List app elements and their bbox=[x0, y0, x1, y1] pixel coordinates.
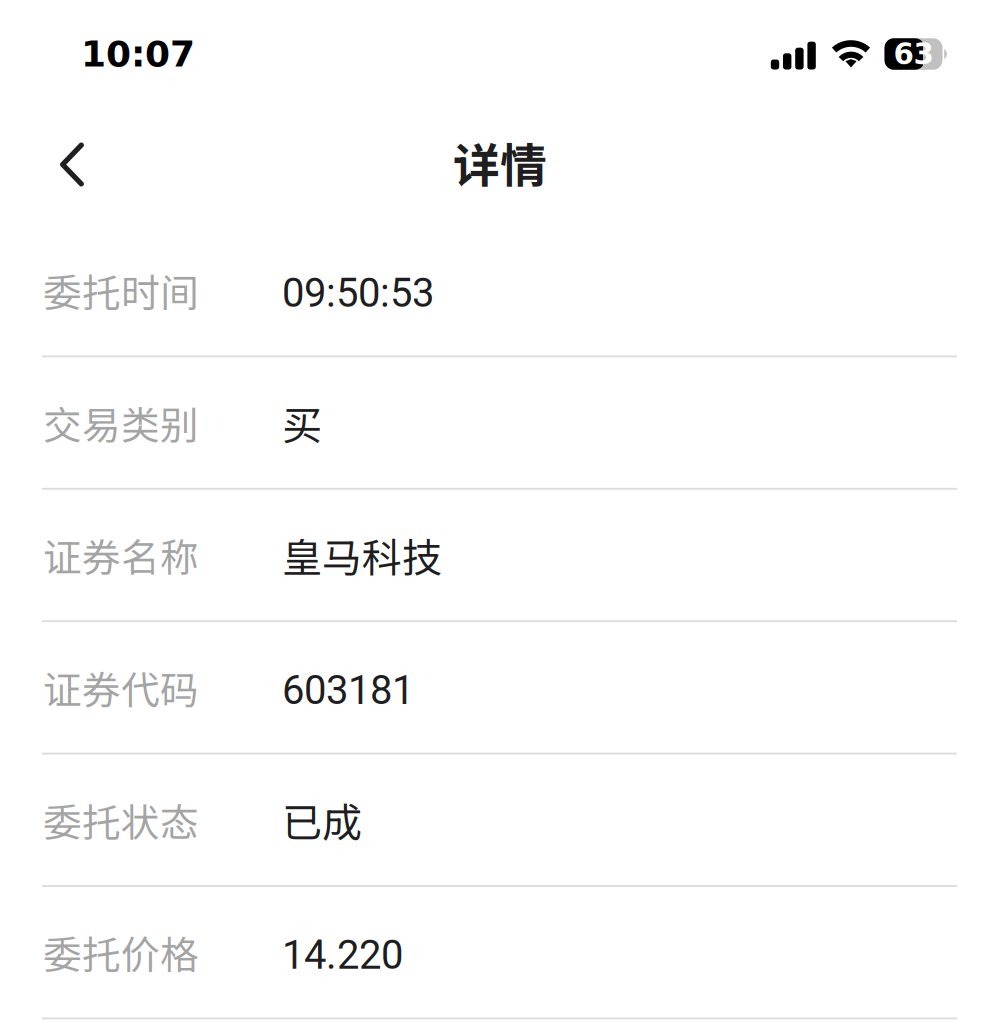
staticText: 14.220 bbox=[282, 932, 403, 979]
staticText: 09:50:53 bbox=[282, 270, 434, 317]
staticText: 证券代码 bbox=[43, 659, 199, 715]
staticText: 已成 bbox=[282, 791, 362, 849]
staticText: 详情 bbox=[453, 129, 547, 196]
staticText: 交易类别 bbox=[43, 395, 199, 451]
staticText: 10:07 bbox=[81, 33, 195, 75]
staticText: 委托价格 bbox=[43, 924, 199, 980]
staticText: 委托时间 bbox=[43, 262, 199, 318]
staticText: 买 bbox=[282, 394, 322, 451]
staticText: 证券名称 bbox=[43, 527, 199, 583]
button[interactable]: Back bbox=[0, 123, 118, 205]
staticText: 603181 bbox=[282, 667, 414, 714]
staticText: 皇马科技 bbox=[282, 526, 442, 584]
staticText: 63 bbox=[893, 37, 933, 71]
staticText: 委托状态 bbox=[43, 792, 199, 848]
